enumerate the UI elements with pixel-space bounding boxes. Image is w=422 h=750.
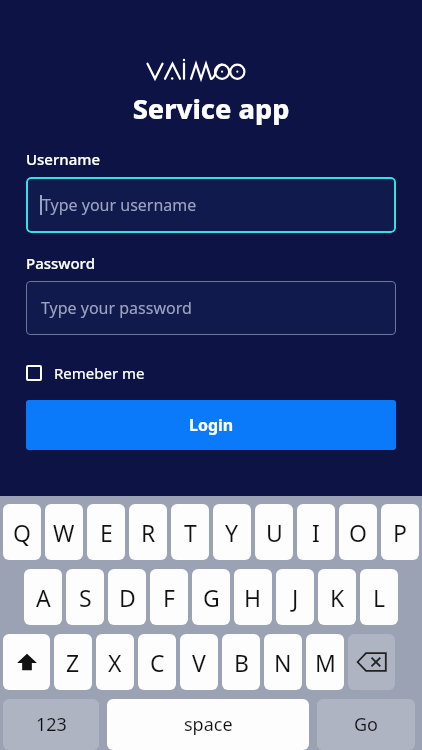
- button[interactable]: V: [180, 634, 218, 690]
- staticText: F: [163, 582, 175, 613]
- staticText: L: [373, 582, 386, 613]
- staticText: T: [184, 517, 197, 548]
- staticText: H: [244, 582, 262, 613]
- button[interactable]: K: [318, 569, 356, 625]
- button[interactable]: Shift: [3, 634, 50, 690]
- staticText: P: [393, 517, 407, 548]
- staticText: N: [274, 647, 292, 678]
- staticText: C: [150, 647, 165, 678]
- button[interactable]: Z: [54, 634, 92, 690]
- button[interactable]: X: [96, 634, 134, 690]
- staticText: space: [184, 712, 233, 737]
- button[interactable]: D: [108, 569, 146, 625]
- staticText: A: [36, 582, 51, 613]
- staticText: K: [330, 582, 345, 613]
- button[interactable]: 123: [3, 699, 99, 750]
- button[interactable]: Type your password: [26, 281, 396, 335]
- button[interactable]: space: [107, 699, 309, 750]
- button[interactable]: Q: [3, 504, 41, 560]
- button[interactable]: T: [171, 504, 209, 560]
- staticText: Type your username: [42, 194, 197, 216]
- staticText: Y: [225, 517, 239, 548]
- staticText: W: [53, 517, 75, 548]
- staticText: Z: [66, 647, 80, 678]
- staticText: Password: [26, 253, 95, 273]
- staticText: E: [100, 517, 113, 548]
- button[interactable]: R: [129, 504, 167, 560]
- staticText: Go: [354, 712, 378, 737]
- button[interactable]: B: [222, 634, 260, 690]
- staticText: O: [349, 517, 367, 548]
- staticText: I: [312, 517, 320, 548]
- button[interactable]: F: [150, 569, 188, 625]
- button[interactable]: U: [255, 504, 293, 560]
- staticText: Username: [26, 149, 101, 169]
- button[interactable]: P: [381, 504, 419, 560]
- button[interactable]: H: [234, 569, 272, 625]
- staticText: Service app: [0, 90, 422, 127]
- button[interactable]: M: [306, 634, 344, 690]
- button[interactable]: Backspace: [348, 634, 395, 690]
- staticText: Remeber me: [54, 363, 145, 383]
- staticText: 123: [36, 712, 67, 737]
- button[interactable]: A: [24, 569, 62, 625]
- button[interactable]: J: [276, 569, 314, 625]
- staticText: V: [192, 647, 206, 678]
- button[interactable]: G: [192, 569, 230, 625]
- staticText: J: [292, 582, 299, 613]
- button[interactable]: L: [360, 569, 398, 625]
- staticText: R: [141, 517, 156, 548]
- button[interactable]: Login: [26, 400, 396, 450]
- button[interactable]: N: [264, 634, 302, 690]
- staticText: D: [119, 582, 136, 613]
- staticText: Login: [189, 414, 234, 436]
- button[interactable]: S: [66, 569, 104, 625]
- staticText: B: [234, 647, 249, 678]
- staticText: S: [79, 582, 92, 613]
- staticText: G: [203, 582, 220, 613]
- staticText: M: [315, 647, 336, 678]
- button[interactable]: E: [87, 504, 125, 560]
- button[interactable]: C: [138, 634, 176, 690]
- button[interactable]: O: [339, 504, 377, 560]
- button[interactable]: W: [45, 504, 83, 560]
- button[interactable]: Type your username: [26, 177, 396, 233]
- staticText: Q: [13, 517, 31, 548]
- staticText: U: [266, 517, 283, 548]
- staticText: X: [108, 647, 122, 678]
- button[interactable]: I: [297, 504, 335, 560]
- button[interactable]: Go: [317, 699, 415, 750]
- button[interactable]: Y: [213, 504, 251, 560]
- staticText: Type your password: [41, 297, 192, 319]
- button[interactable]: Remeber me: [26, 363, 145, 383]
